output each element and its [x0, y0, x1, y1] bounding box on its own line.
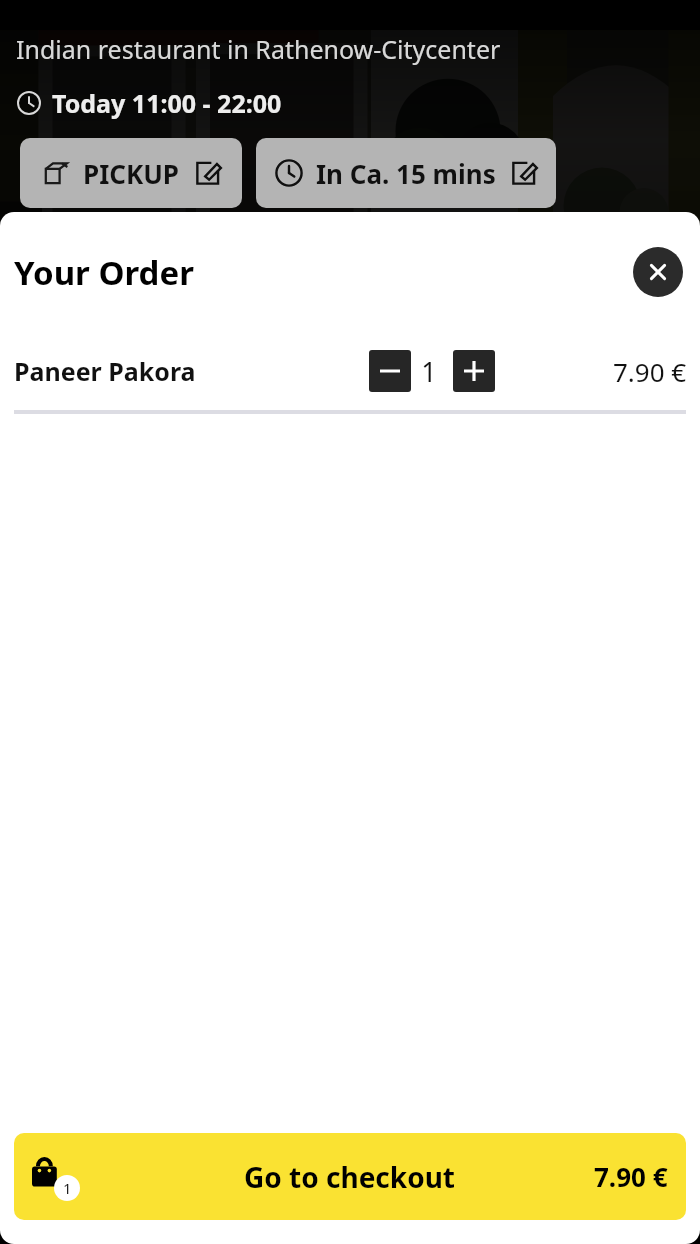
button[interactable]: In Ca. 15 mins: [256, 138, 556, 208]
button[interactable]: Paneer Pakora: [0, 332, 700, 410]
button[interactable]: Decrease quantity: [369, 350, 411, 392]
staticText: 1: [63, 1178, 72, 1198]
staticText: Your Order: [14, 250, 194, 295]
button[interactable]: Close: [633, 247, 683, 297]
staticText: Today 11:00 - 22:00: [52, 86, 282, 120]
button[interactable]: 1: [14, 1133, 686, 1220]
staticText: Go to checkout: [244, 1158, 456, 1196]
staticText: Indian restaurant in Rathenow-Citycenter: [16, 32, 501, 66]
button[interactable]: PICKUP: [20, 138, 242, 208]
staticText: Paneer Pakora: [14, 354, 196, 388]
staticText: 1: [421, 353, 437, 390]
button[interactable]: Increase quantity: [453, 350, 495, 392]
staticText: 7.90 €: [613, 354, 687, 389]
staticText: PICKUP: [83, 156, 180, 191]
staticText: 7.90 €: [594, 1159, 668, 1194]
staticText: In Ca. 15 mins: [316, 156, 496, 191]
